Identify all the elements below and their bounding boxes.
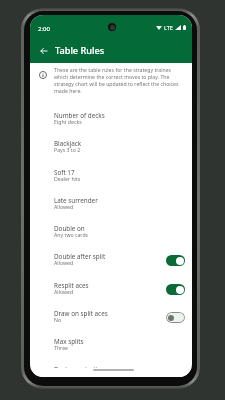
button[interactable]: Blackjack (30, 138, 192, 166)
staticText: Draw on split aces (54, 309, 108, 318)
staticText: Dealer hits (54, 175, 81, 182)
staticText: Eight decks (54, 118, 82, 125)
button[interactable]: Toggle off (166, 312, 185, 323)
staticText: 2:00 (38, 25, 50, 33)
button[interactable]: Max splits (30, 336, 192, 364)
staticText: Double after split (54, 252, 106, 261)
staticText: Allowed (54, 203, 74, 210)
staticText: Any two cards (54, 231, 89, 238)
staticText: Blackjack (54, 139, 82, 148)
staticText: These are the table rules for the strate… (54, 66, 182, 94)
button[interactable]: Toggle off (166, 368, 185, 377)
button[interactable]: Back (38, 45, 49, 56)
staticText: Allowed (54, 288, 74, 295)
staticText: Three (54, 344, 68, 351)
staticText: Late surrender (54, 196, 98, 205)
button[interactable]: Toggle on (166, 284, 185, 295)
button[interactable]: Double after split (30, 251, 192, 279)
staticText: Pays 3 to 2 (54, 146, 81, 153)
button[interactable]: Resplit aces (30, 280, 192, 308)
staticText: Soft 17 (54, 168, 75, 177)
button[interactable]: Number of decks (30, 110, 192, 138)
staticText: No (54, 316, 62, 323)
button[interactable]: Deck penetration (30, 364, 192, 377)
staticText: Table Rules (55, 44, 105, 57)
button[interactable]: Toggle on (166, 255, 185, 266)
staticText: Double on (54, 224, 85, 233)
button[interactable]: Draw on split aces (30, 308, 192, 336)
staticText: Resplit aces (54, 281, 89, 290)
staticText: LTE (164, 24, 173, 31)
staticText: Max splits (54, 337, 84, 346)
staticText: Deck penetration (54, 365, 105, 374)
button[interactable]: Late surrender (30, 195, 192, 223)
staticText: Number of decks (54, 111, 105, 120)
button[interactable]: Double on (30, 223, 192, 251)
staticText: Allowed (54, 259, 74, 266)
button[interactable]: Soft 17 (30, 167, 192, 195)
